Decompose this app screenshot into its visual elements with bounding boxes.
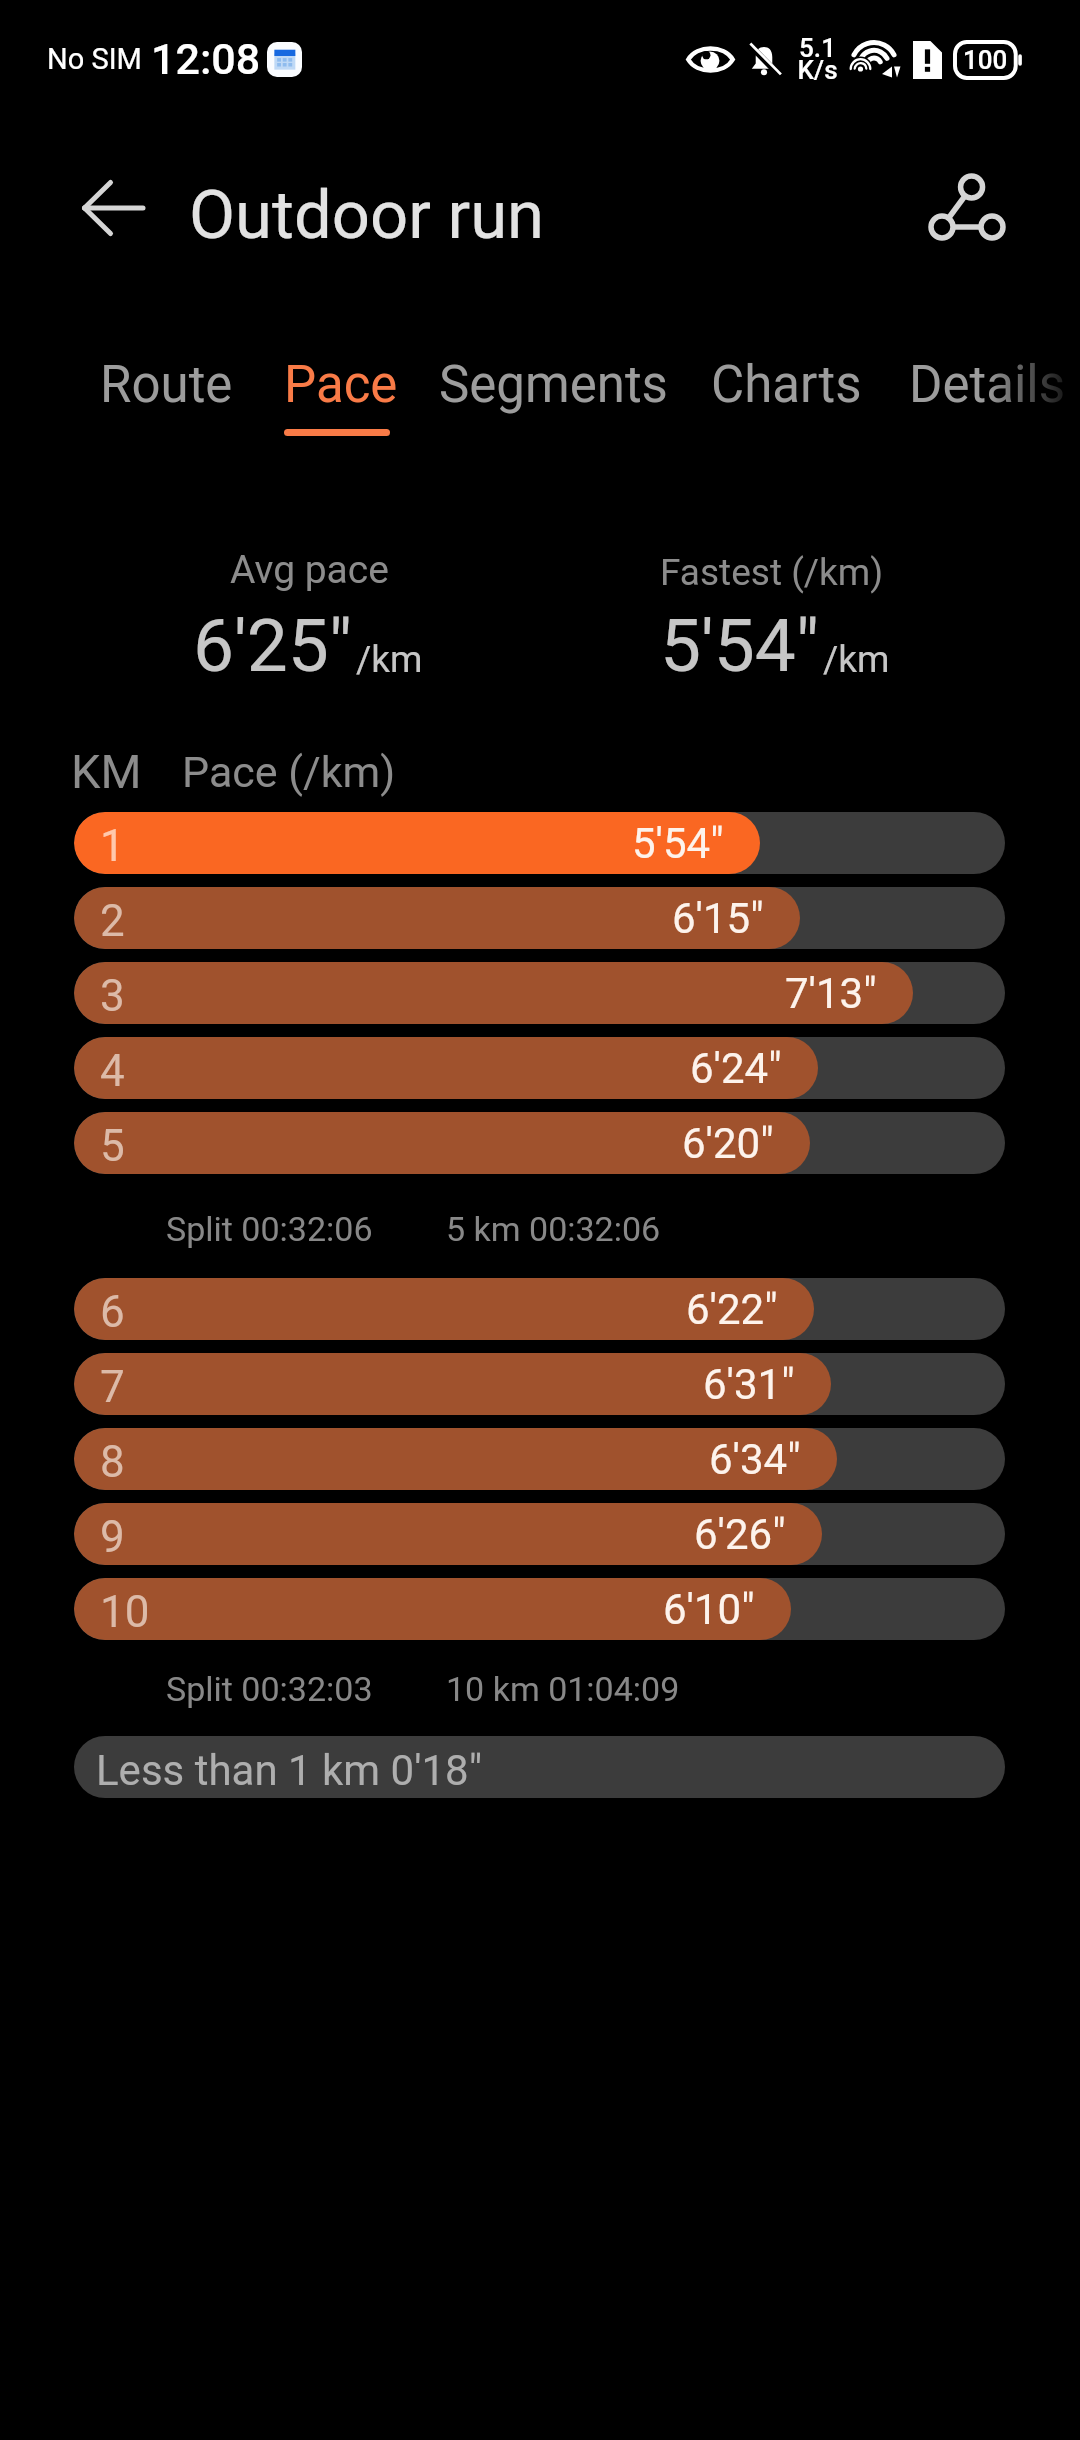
staticText: Route — [100, 355, 233, 415]
staticText: 9 — [100, 1511, 125, 1563]
staticText: 6'20" — [682, 1119, 774, 1168]
button[interactable]: 10 — [74, 1578, 1005, 1640]
staticText: 10 km 01:04:09 — [446, 1669, 680, 1709]
button[interactable]: Less than 1 km 0'18" — [74, 1736, 1005, 1798]
staticText: No SIM — [47, 42, 142, 76]
staticText: 5.1 K/s — [797, 33, 838, 86]
staticText: Split 00:32:03 — [166, 1669, 373, 1709]
button[interactable]: 8 — [74, 1428, 1005, 1490]
button[interactable]: 5 — [74, 1112, 1005, 1174]
staticText: 6'26" — [694, 1510, 786, 1559]
staticText: KM — [71, 744, 142, 799]
staticText: 7'13" — [785, 969, 877, 1018]
staticText: 6'25" — [193, 603, 353, 689]
staticText: Pace (/km) — [182, 747, 396, 797]
staticText: /km — [356, 638, 423, 681]
button[interactable]: Segments — [411, 330, 692, 450]
button[interactable]: 9 — [74, 1503, 1005, 1565]
staticText: 6 — [100, 1286, 125, 1338]
staticText: 7 — [100, 1361, 125, 1413]
staticText: 100 — [963, 45, 1008, 75]
staticText: Split 00:32:06 — [166, 1209, 373, 1249]
staticText: 5'54" — [632, 819, 724, 868]
staticText: 10 — [100, 1586, 150, 1638]
staticText: Details — [909, 355, 1066, 415]
button[interactable]: 6 — [74, 1278, 1005, 1340]
staticText: 5'54" — [660, 603, 820, 689]
button[interactable]: Route — [72, 330, 255, 450]
button[interactable]: 7 — [74, 1353, 1005, 1415]
staticText: 1 — [100, 820, 125, 872]
staticText: /km — [823, 638, 890, 681]
staticText: 12:08 — [151, 34, 261, 84]
button[interactable]: 1 — [74, 812, 1005, 874]
staticText: Charts — [711, 355, 862, 415]
staticText: Pace — [284, 355, 398, 415]
staticText: 6'34" — [709, 1435, 801, 1484]
staticText: 6'15" — [672, 894, 764, 943]
staticText: 5 — [100, 1120, 125, 1172]
staticText: 6'31" — [703, 1360, 795, 1409]
button[interactable]: 3 — [74, 962, 1005, 1024]
button[interactable]: 2 — [74, 887, 1005, 949]
button[interactable]: Charts — [683, 330, 884, 450]
staticText: Outdoor run — [189, 176, 545, 255]
staticText: 5 km 00:32:06 — [446, 1209, 661, 1249]
staticText: Fastest (/km) — [660, 551, 884, 594]
button[interactable]: Pace — [256, 330, 419, 450]
button[interactable]: 4 — [74, 1037, 1005, 1099]
button[interactable]: Share — [914, 154, 1020, 260]
staticText: 6'10" — [663, 1585, 755, 1634]
button[interactable]: Details — [881, 330, 1080, 450]
staticText: Avg pace — [230, 547, 389, 593]
staticText: 4 — [100, 1045, 125, 1097]
staticText: 6'22" — [686, 1285, 778, 1334]
staticText: Less than 1 km 0'18" — [96, 1746, 483, 1795]
button[interactable]: Back — [60, 155, 166, 261]
staticText: 2 — [100, 895, 125, 947]
staticText: 3 — [100, 970, 125, 1022]
staticText: 8 — [100, 1436, 125, 1488]
staticText: Segments — [439, 355, 668, 415]
staticText: 6'24" — [690, 1044, 782, 1093]
